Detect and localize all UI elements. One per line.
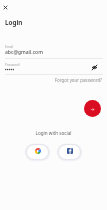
button[interactable]: Sign in with Facebook [57, 142, 82, 161]
staticText: Password [5, 63, 20, 67]
button[interactable]: Show password [90, 63, 99, 72]
button[interactable]: Continue [84, 100, 101, 117]
staticText: Login with social [0, 130, 107, 136]
staticText: Login [5, 18, 23, 27]
staticText: Forgot your password? [0, 77, 102, 83]
staticText: Email [5, 45, 14, 49]
button[interactable]: Close [2, 4, 9, 11]
staticText: abc@gmail.com [5, 49, 43, 56]
button[interactable]: Sign in with Google [25, 142, 50, 161]
